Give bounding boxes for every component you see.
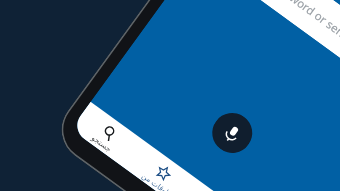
button[interactable]: جستجو <box>71 102 145 168</box>
button[interactable]: اوقات من <box>125 141 199 191</box>
button[interactable]: Voice search <box>204 105 260 161</box>
staticText: اوقات من <box>140 170 171 191</box>
staticText: Enter a word or sentence <box>253 0 340 59</box>
button[interactable]: Enter a word or sentence <box>209 0 340 104</box>
button[interactable]: تنظیمات <box>179 180 253 191</box>
staticText: جستجو <box>89 133 113 154</box>
